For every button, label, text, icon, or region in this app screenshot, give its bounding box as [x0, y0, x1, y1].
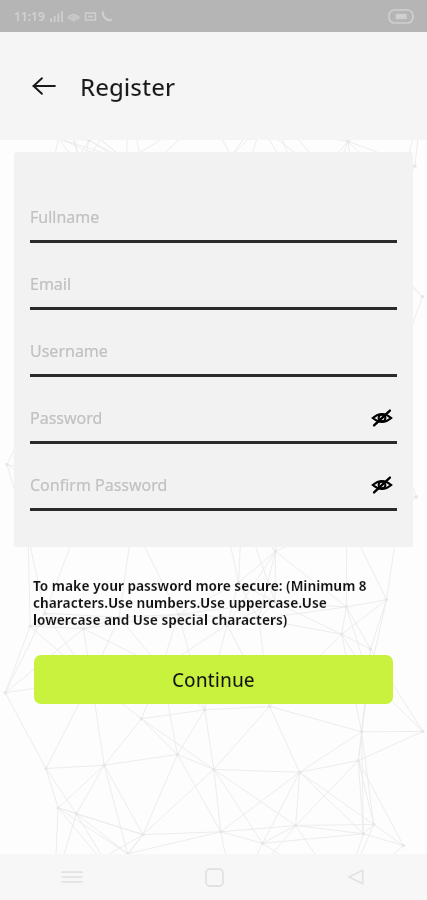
- staticText: Continue: [172, 667, 255, 693]
- button[interactable]: Fullname: [22, 204, 405, 243]
- button[interactable]: Email: [22, 271, 405, 310]
- staticText: Confirm Password: [30, 474, 168, 496]
- button[interactable]: Password: [22, 405, 405, 444]
- staticText: Email: [30, 273, 72, 295]
- button[interactable]: Confirm Password: [22, 472, 405, 511]
- staticText: Username: [30, 340, 108, 362]
- staticText: To make your password more secure: (Mini…: [33, 577, 394, 629]
- button[interactable]: Toggle password visibility: [367, 405, 397, 431]
- button[interactable]: Username: [22, 338, 405, 377]
- staticText: 11:19: [14, 8, 45, 24]
- button[interactable]: Continue: [34, 655, 393, 704]
- button[interactable]: Toggle password visibility: [367, 472, 397, 498]
- staticText: Register: [80, 70, 176, 103]
- button[interactable]: Back: [24, 66, 64, 106]
- staticText: Password: [30, 407, 103, 429]
- staticText: Fullname: [30, 206, 100, 228]
